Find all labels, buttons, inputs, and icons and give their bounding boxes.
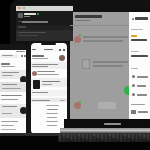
button[interactable]: Call — [124, 86, 133, 95]
